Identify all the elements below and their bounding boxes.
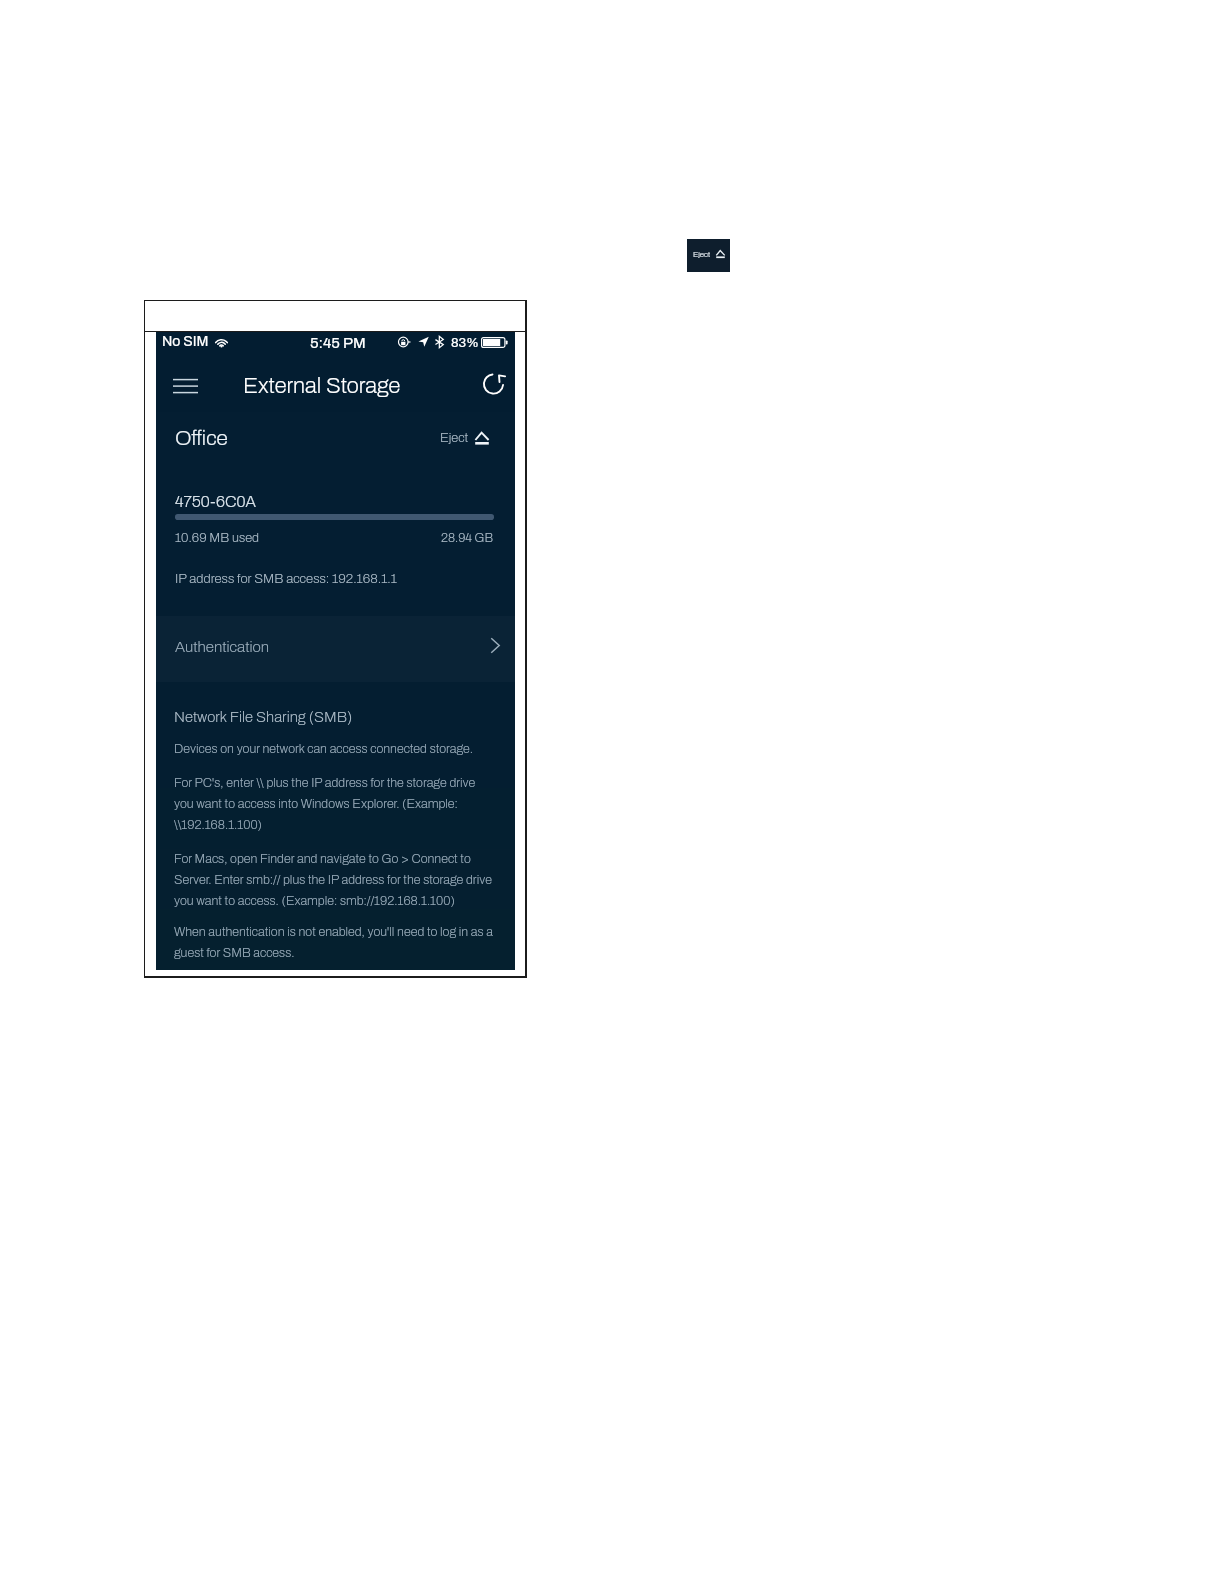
staticText: For Macs, open Finder and navigate to Go… — [174, 852, 492, 908]
staticText: 10.69 MB used — [175, 531, 260, 545]
staticText: Eject — [440, 431, 469, 445]
staticText: No SIM — [162, 334, 209, 349]
staticText: 83% — [451, 335, 479, 349]
button[interactable]: Eject — [687, 239, 730, 272]
staticText: Devices on your network can access conne… — [174, 742, 473, 756]
staticText: Eject — [693, 250, 711, 258]
staticText: When authentication is not enabled, you'… — [174, 925, 493, 960]
button[interactable]: Menu — [166, 370, 204, 402]
button[interactable]: Refresh — [478, 369, 509, 400]
staticText: External Storage — [243, 374, 401, 398]
button[interactable]: Eject — [434, 427, 494, 455]
staticText: Authentication — [175, 639, 270, 656]
staticText: 4750-6C0A — [175, 493, 256, 510]
staticText: For PC's, enter \\ plus the IP address f… — [174, 776, 476, 832]
staticText: Office — [175, 427, 228, 450]
staticText: IP address for SMB access: 192.168.1.1 — [175, 571, 397, 585]
staticText: 5:45 PM — [310, 335, 366, 351]
button[interactable]: Authentication — [156, 616, 515, 682]
staticText: Network File Sharing (SMB) — [174, 709, 353, 725]
staticText: 28.94 GB — [441, 531, 494, 544]
